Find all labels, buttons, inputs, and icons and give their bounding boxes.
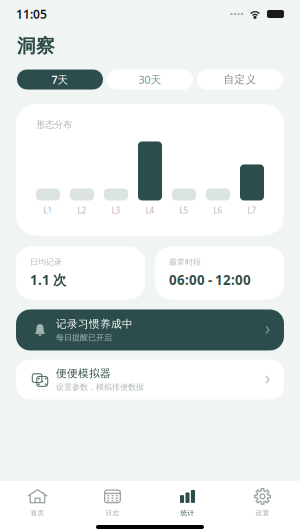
staticText: L1 <box>43 205 52 216</box>
staticText: L3 <box>111 205 120 216</box>
staticText: 统计 <box>180 509 194 517</box>
staticText: 最常时段 <box>169 257 201 267</box>
staticText: 自定义 <box>223 73 256 86</box>
button[interactable]: 便便模拟器 <box>16 359 284 399</box>
staticText: 每日提醒已开启 <box>56 333 112 342</box>
staticText: 记录习惯养成中 <box>56 317 133 331</box>
staticText: 1.1 次 <box>30 271 66 289</box>
staticText: L2 <box>77 205 86 216</box>
button[interactable]: 7天 <box>17 69 103 89</box>
staticText: 首页 <box>30 509 44 517</box>
staticText: L7 <box>247 205 256 216</box>
staticText: 设置参数，模拟排便数据 <box>56 382 144 392</box>
staticText: 形态分布 <box>36 119 72 130</box>
staticText: L5 <box>179 205 188 216</box>
button[interactable]: 记录习惯养成中 <box>16 309 284 350</box>
button[interactable]: 日志 <box>75 481 150 524</box>
staticText: 30天 <box>138 72 161 87</box>
staticText: L4 <box>145 205 154 216</box>
staticText: 日均记录 <box>30 257 62 267</box>
button[interactable]: 首页 <box>0 481 75 524</box>
button[interactable]: 30天 <box>107 69 193 89</box>
button[interactable]: 设置 <box>225 481 300 524</box>
button[interactable]: 统计 <box>150 481 225 524</box>
staticText: 7天 <box>51 72 68 87</box>
staticText: L6 <box>213 205 222 216</box>
staticText: 设置 <box>255 509 269 517</box>
button[interactable]: 自定义 <box>197 69 283 89</box>
staticText: 日志 <box>105 509 119 517</box>
staticText: 洞察 <box>17 34 55 57</box>
staticText: 06:00 - 12:00 <box>169 271 251 289</box>
staticText: 11:05 <box>16 6 47 22</box>
staticText: 便便模拟器 <box>56 367 111 380</box>
